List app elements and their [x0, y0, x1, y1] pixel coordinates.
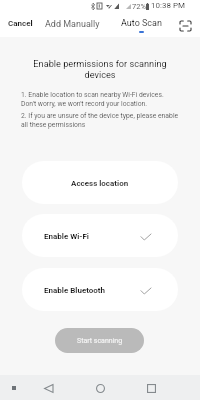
button[interactable]: Auto Scan	[121, 18, 162, 33]
button[interactable]: Access location	[22, 161, 178, 204]
button[interactable]: Enable Wi-Fi	[22, 214, 178, 257]
staticText: Add Manually	[45, 19, 100, 30]
button[interactable]: Home	[90, 378, 111, 399]
staticText: Cancel	[8, 19, 33, 28]
button[interactable]: Scan QR code	[178, 18, 193, 33]
staticText: Auto Scan	[121, 18, 162, 29]
button[interactable]: Start scanning	[55, 328, 144, 353]
button[interactable]: Enable Bluetooth	[22, 268, 178, 311]
staticText: 2. If you are unsure of the device type,…	[21, 112, 179, 128]
staticText: Enable Wi-Fi	[44, 232, 89, 241]
staticText: Start scanning	[77, 337, 123, 345]
staticText: Access location	[71, 179, 129, 188]
staticText: 72%	[132, 2, 146, 11]
staticText: 10:38 PM	[151, 1, 185, 10]
button[interactable]: Cancel	[8, 19, 33, 28]
button[interactable]: Add Manually	[45, 19, 100, 30]
staticText: Enable permissions for scanning devices	[20, 58, 180, 80]
staticText: Enable Bluetooth	[44, 286, 106, 295]
button[interactable]: Back	[38, 378, 59, 399]
staticText: 1. Enable location to scan nearby Wi-Fi …	[21, 91, 164, 107]
button[interactable]: Recent apps	[141, 378, 162, 399]
